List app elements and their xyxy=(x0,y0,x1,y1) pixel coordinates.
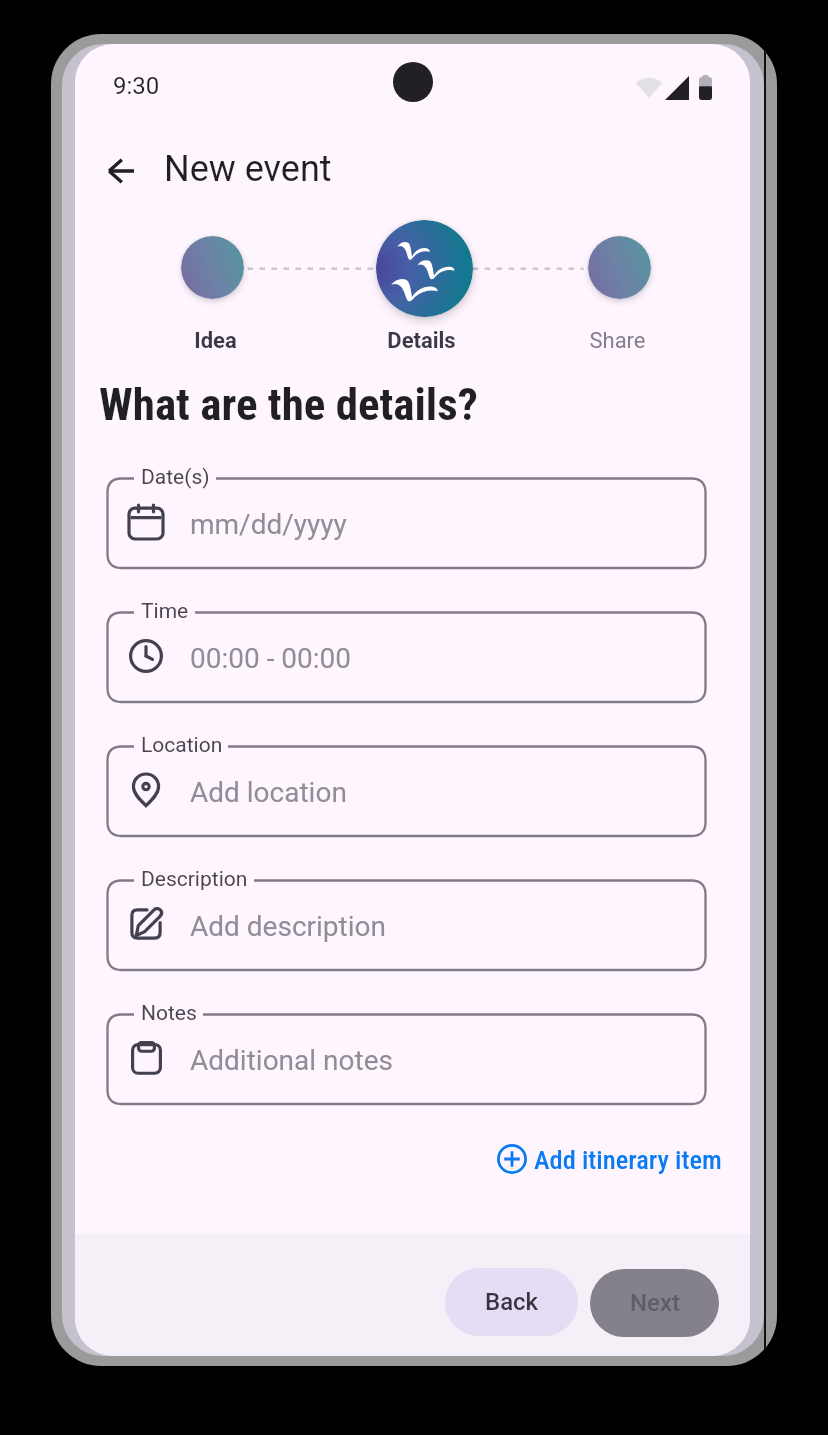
button[interactable]: Step xyxy=(588,236,651,299)
staticText: Additional notes xyxy=(190,1044,393,1077)
button[interactable]: Details step xyxy=(376,220,473,317)
staticText: Idea xyxy=(194,328,237,354)
staticText: Add itinerary item xyxy=(534,1144,722,1175)
staticText: Date(s) xyxy=(141,465,210,490)
staticText: Notes xyxy=(141,1001,197,1026)
button[interactable]: Step xyxy=(181,236,244,299)
staticText: 00:00 - 00:00 xyxy=(190,642,352,675)
staticText: Add location xyxy=(190,776,347,809)
button[interactable]: Back xyxy=(445,1268,578,1336)
staticText: Description xyxy=(141,867,248,892)
staticText: Details xyxy=(387,328,456,354)
button[interactable]: Back xyxy=(84,135,156,207)
staticText: mm/dd/yyyy xyxy=(190,508,347,541)
staticText: Location xyxy=(141,733,223,758)
staticText: Share xyxy=(589,328,646,354)
staticText: 9:30 xyxy=(113,72,160,100)
staticText: What are the details? xyxy=(99,378,478,431)
staticText: Add description xyxy=(190,910,386,943)
button[interactable]: Add itinerary item xyxy=(497,1139,722,1179)
staticText: Time xyxy=(141,599,189,624)
staticText: Next xyxy=(630,1289,680,1317)
staticText: Back xyxy=(485,1288,539,1316)
button[interactable]: Next xyxy=(590,1269,719,1337)
staticText: New event xyxy=(164,148,332,190)
